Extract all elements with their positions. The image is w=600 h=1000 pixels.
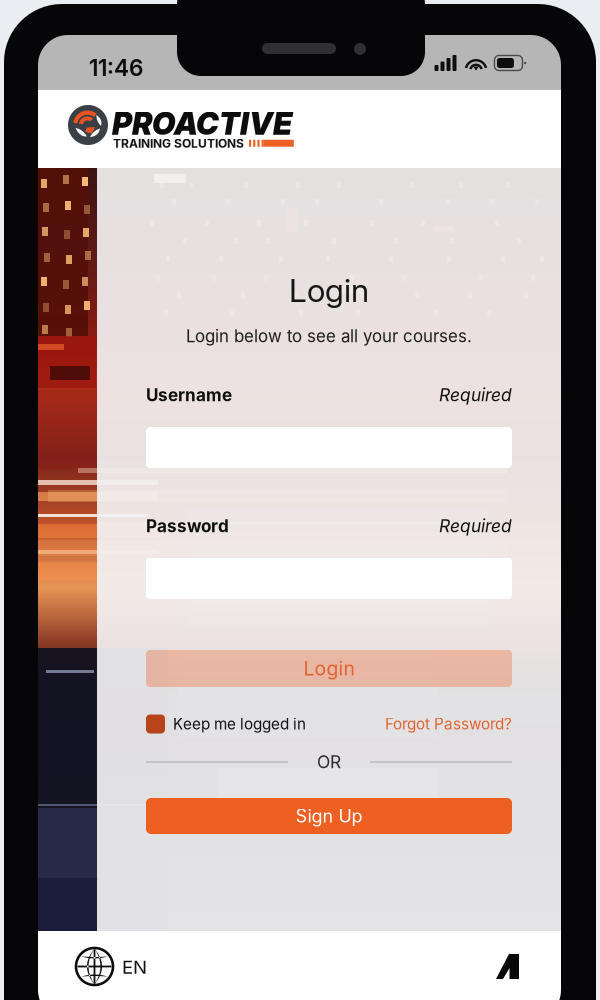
- button[interactable]: Login: [146, 650, 512, 687]
- staticText: Login below to see all your courses.: [186, 326, 472, 346]
- staticText: Keep me logged in: [173, 715, 306, 733]
- staticText: PROACTIVE: [112, 105, 292, 142]
- staticText: Required: [439, 515, 512, 536]
- staticText: OR: [317, 751, 341, 772]
- staticText: Login: [303, 657, 354, 680]
- staticText: Required: [439, 384, 512, 405]
- staticText: 11:46: [89, 54, 143, 81]
- button[interactable]: Sign Up: [146, 798, 512, 834]
- button[interactable]: Keep me logged in: [146, 714, 306, 733]
- staticText: Login: [289, 271, 369, 310]
- staticText: Sign Up: [295, 805, 362, 827]
- staticText: Forgot Password?: [385, 715, 512, 733]
- staticText: Username: [146, 385, 232, 405]
- staticText: EN: [122, 956, 147, 978]
- button[interactable]: Brand logo: [496, 954, 519, 979]
- staticText: Password: [146, 516, 229, 536]
- button[interactable]: EN: [76, 948, 147, 986]
- button[interactable]: Forgot Password?: [385, 715, 512, 733]
- staticText: TRAINING SOLUTIONS: [113, 136, 244, 150]
